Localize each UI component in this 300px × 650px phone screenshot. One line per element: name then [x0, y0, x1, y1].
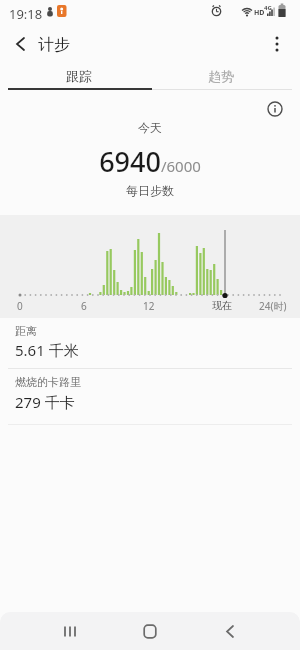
staticText: 跟踪 — [66, 68, 92, 84]
staticText: 计步 — [38, 35, 70, 55]
staticText: 距离 — [15, 324, 37, 338]
button[interactable] — [190, 612, 270, 650]
button[interactable] — [6, 30, 34, 58]
button[interactable] — [110, 612, 190, 650]
staticText: 6 — [81, 299, 87, 313]
button[interactable] — [261, 95, 289, 123]
staticText: 现在 — [212, 299, 232, 312]
staticText: HD — [254, 8, 265, 18]
button[interactable] — [30, 612, 110, 650]
staticText: 0 — [17, 299, 23, 313]
staticText: 燃烧的卡路里 — [15, 375, 81, 389]
staticText: 24(时) — [259, 299, 287, 313]
button[interactable]: 跟踪 — [8, 62, 150, 90]
staticText: 今天 — [0, 120, 300, 135]
staticText: 4G — [264, 4, 272, 12]
staticText: 279 千卡 — [15, 392, 75, 412]
button[interactable] — [263, 30, 291, 58]
staticText: 趋势 — [208, 68, 234, 84]
staticText: 5.61 千米 — [15, 340, 79, 360]
staticText: 12 — [143, 299, 155, 313]
staticText: 每日步数 — [0, 183, 300, 198]
staticText: 19:18 — [9, 5, 43, 23]
button[interactable]: 趋势 — [150, 62, 292, 90]
staticText: 6940/6000 — [0, 143, 300, 180]
